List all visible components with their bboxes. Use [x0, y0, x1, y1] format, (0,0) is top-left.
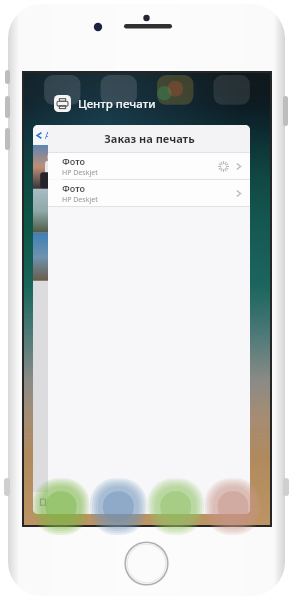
staticText: Фото [62, 155, 86, 167]
button[interactable]: Print Center [54, 95, 156, 112]
button[interactable]: Фото [48, 153, 250, 179]
staticText: Центр печати [78, 96, 156, 112]
other: Print Center [54, 95, 71, 112]
staticText: Al [45, 130, 53, 141]
button[interactable]: Фото [48, 180, 250, 206]
button[interactable]: Al [33, 125, 73, 514]
staticText: HP Deskjet [62, 195, 98, 205]
staticText: Фото [62, 182, 86, 194]
button[interactable]: Home [124, 541, 169, 586]
staticText: HP Deskjet [62, 168, 98, 178]
staticText: Заказ на печать [104, 131, 195, 146]
